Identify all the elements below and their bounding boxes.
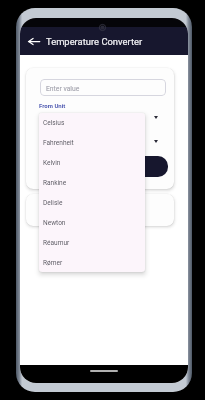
- button[interactable]: From unit dropdown: [147, 109, 164, 126]
- button[interactable]: Newton: [39, 213, 145, 233]
- button[interactable]: Rømer: [39, 253, 145, 272]
- button[interactable]: Réaumur: [39, 233, 145, 253]
- staticText: Kelvin: [43, 159, 61, 167]
- staticText: Celsius: [43, 119, 65, 127]
- staticText: Temperature Converter: [46, 36, 143, 47]
- button[interactable]: Rankine: [39, 173, 145, 193]
- button[interactable]: Convert: [40, 156, 168, 177]
- staticText: Réaumur: [43, 239, 70, 247]
- button[interactable]: To unit dropdown: [147, 133, 164, 150]
- staticText: Delisle: [43, 199, 63, 207]
- staticText: From Unit: [39, 102, 66, 109]
- staticText: Newton: [43, 219, 66, 227]
- button[interactable]: Back: [23, 31, 44, 52]
- staticText: Rømer: [43, 259, 63, 267]
- button[interactable]: Fahrenheit: [39, 133, 145, 153]
- button[interactable]: Kelvin: [39, 153, 145, 173]
- button[interactable]: Celsius: [39, 113, 145, 133]
- button[interactable]: Enter value: [40, 79, 166, 96]
- staticText: Fahrenheit: [43, 139, 74, 147]
- staticText: Enter value: [46, 85, 80, 93]
- staticText: Rankine: [43, 179, 67, 187]
- button[interactable]: Delisle: [39, 193, 145, 213]
